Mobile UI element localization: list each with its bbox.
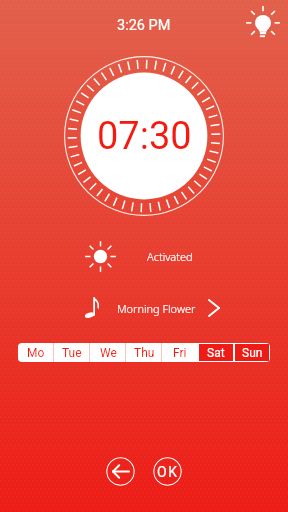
button[interactable]: Activated: [82, 240, 202, 273]
button[interactable]: Mo: [18, 343, 54, 362]
staticText: Activated: [147, 249, 193, 264]
button[interactable]: Morning Flower: [78, 294, 226, 322]
button[interactable]: OK: [153, 457, 182, 486]
staticText: Thu: [134, 346, 155, 360]
button[interactable]: Sat: [198, 343, 234, 362]
button[interactable]: Thu: [126, 343, 162, 362]
button[interactable]: Sun: [234, 343, 270, 362]
staticText: Fri: [173, 346, 187, 360]
button[interactable]: We: [90, 343, 126, 362]
button[interactable]: Tue: [54, 343, 90, 362]
button[interactable]: Back: [106, 457, 135, 486]
staticText: Tue: [62, 346, 82, 360]
button[interactable]: Fri: [162, 343, 198, 362]
staticText: Sat: [207, 346, 225, 360]
staticText: 07:30: [97, 114, 192, 159]
staticText: Sun: [242, 346, 263, 360]
staticText: 3:26 PM: [117, 17, 171, 34]
staticText: OK: [157, 464, 179, 480]
button[interactable]: Toggle light: [247, 8, 279, 40]
staticText: Mo: [27, 346, 45, 360]
staticText: Morning Flower: [117, 301, 196, 316]
staticText: We: [100, 346, 117, 360]
